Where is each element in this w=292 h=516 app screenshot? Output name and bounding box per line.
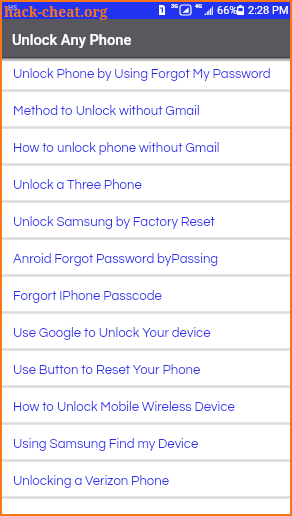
staticText: Use Google to Unlock Your device [13,326,211,340]
staticText: Unlock Any Phone [12,31,132,48]
staticText: Method to Unlock without Gmail [13,104,200,118]
staticText: hack-cheat.org [4,2,108,21]
button[interactable]: Unlock Samsung by Factory Reset [2,203,290,240]
staticText: How to unlock phone without Gmail [13,141,220,155]
staticText: Unlocking a Verizon Phone [13,474,170,488]
staticText: 66% [217,4,238,17]
staticText: 4G [195,3,202,9]
staticText: Unlock a Three Phone [13,178,142,192]
staticText: Anroid Forgot Password byPassing [13,252,219,266]
staticText: 3G [171,3,178,9]
button[interactable]: How to unlock phone without Gmail [2,129,290,166]
staticText: Forgort IPhone Passcode [13,289,162,303]
button[interactable]: Unlock Phone by Using Forgot My Password [2,55,290,92]
staticText: Use Button to Reset Your Phone [13,363,201,377]
button[interactable]: How to Unlock Mobile Wireless Device [2,388,290,425]
button[interactable]: Method to Unlock without Gmail [2,92,290,129]
button[interactable]: Forgort IPhone Passcode [2,277,290,314]
staticText: Unlock Phone by Using Forgot My Password [13,67,271,81]
staticText: Using Samsung Find my Device [13,437,199,451]
staticText: Unlock Samsung by Factory Reset [13,215,215,229]
button[interactable]: Use Google to Unlock Your device [2,314,290,351]
button[interactable]: Use Button to Reset Your Phone [2,351,290,388]
staticText: 2:28 PM [248,4,289,17]
button[interactable]: Using Samsung Find my Device [2,425,290,462]
staticText: HS [8,3,18,13]
staticText: How to Unlock Mobile Wireless Device [13,400,235,414]
button[interactable]: Unlocking a Verizon Phone [2,462,290,499]
button[interactable]: Anroid Forgot Password byPassing [2,240,290,277]
button[interactable]: Unlock a Three Phone [2,166,290,203]
